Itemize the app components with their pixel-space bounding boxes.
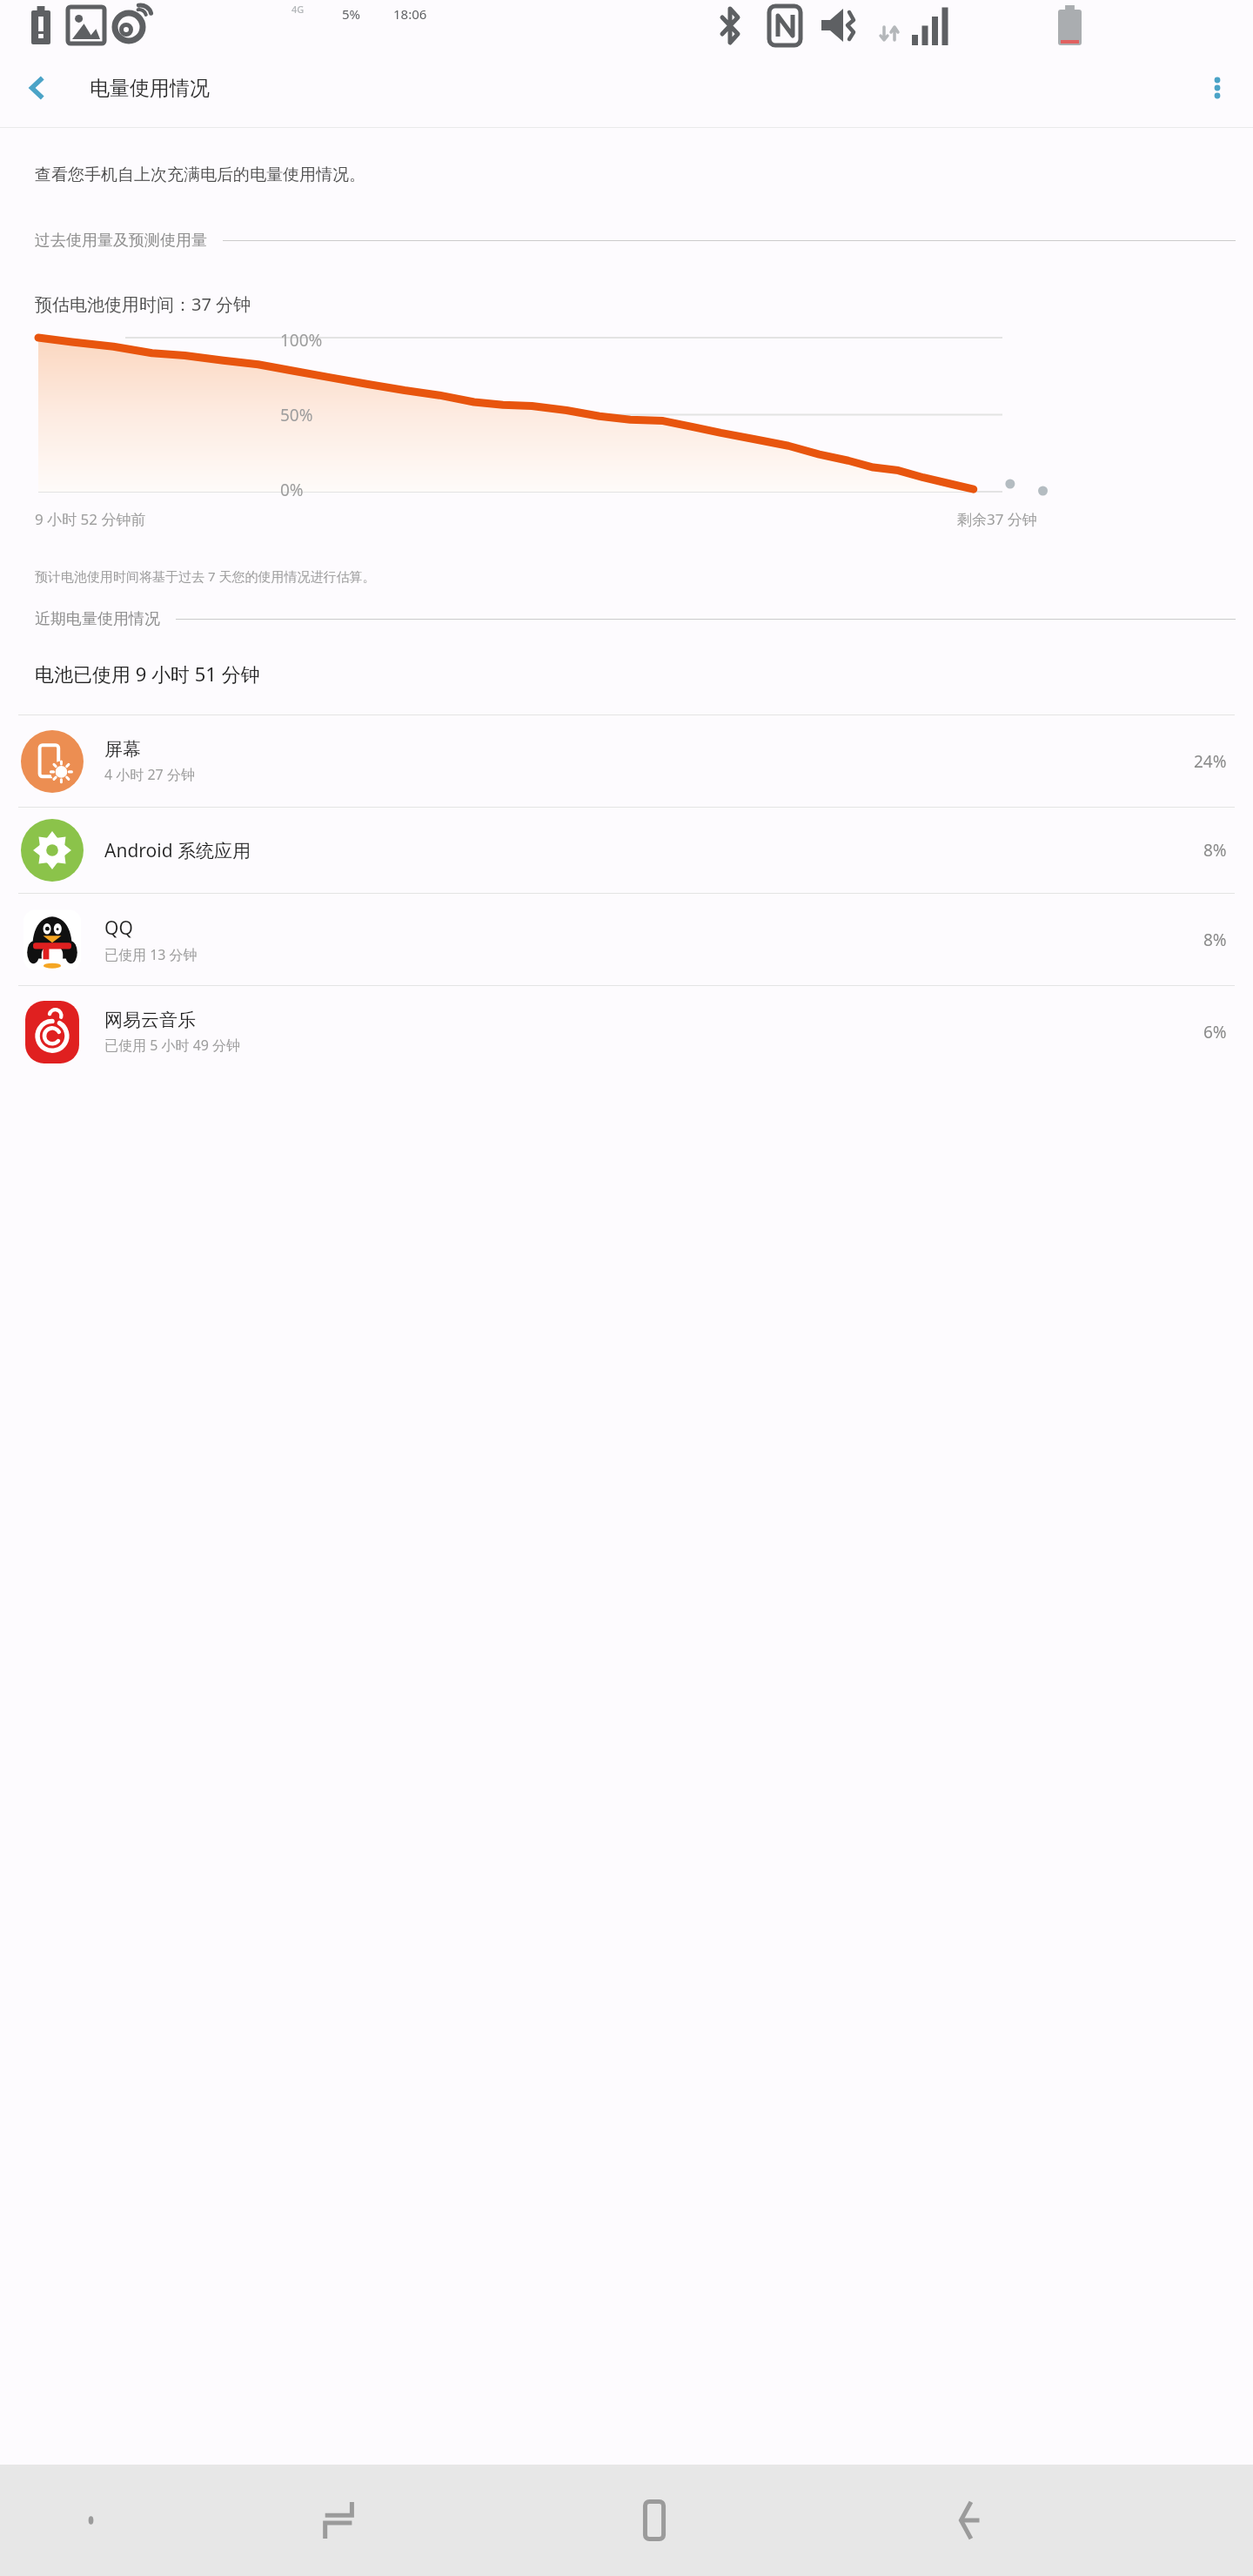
staticText: 4 小时 27 分钟 [104, 765, 195, 784]
button[interactable]: Back [812, 2465, 1127, 2576]
staticText: 预计电池使用时间将基于过去 7 天您的使用情况进行估算。 [35, 567, 376, 585]
staticText: 近期电量使用情况 [35, 609, 160, 629]
staticText: 0% [280, 479, 304, 501]
staticText: 已使用 13 分钟 [104, 945, 198, 964]
button[interactable]: Recent apps [182, 2465, 497, 2576]
staticText: 5% [342, 5, 361, 23]
staticText: 8% [1203, 839, 1227, 862]
button[interactable]: More options [1192, 63, 1243, 113]
staticText: 过去使用量及预测使用量 [35, 231, 207, 251]
staticText: 电量使用情况 [90, 76, 210, 101]
staticText: QQ [104, 916, 133, 941]
staticText: 预估电池使用时间：37 分钟 [35, 292, 251, 316]
button[interactable]: Home [497, 2465, 812, 2576]
button[interactable]: 屏幕 [0, 715, 1253, 807]
button[interactable]: QQ [0, 894, 1253, 985]
staticText: 9 小时 52 分钟前 [35, 509, 146, 529]
staticText: Android 系统应用 [104, 838, 251, 863]
staticText: 已使用 5 小时 49 分钟 [104, 1036, 241, 1055]
staticText: 100% [280, 329, 323, 352]
button[interactable]: Back [12, 63, 63, 113]
staticText: 屏幕 [104, 738, 141, 761]
staticText: 24% [1194, 750, 1227, 773]
staticText: 网易云音乐 [104, 1009, 196, 1031]
staticText: 剩余37 分钟 [957, 509, 1037, 529]
staticText: 8% [1203, 929, 1227, 951]
staticText: 50% [280, 404, 313, 426]
button[interactable]: 网易云音乐 [0, 986, 1253, 1077]
button[interactable]: Android 系统应用 [0, 808, 1253, 893]
staticText: 18:06 [393, 5, 427, 23]
staticText: 6% [1203, 1021, 1227, 1043]
staticText: 4G [291, 3, 305, 16]
staticText: 查看您手机自上次充满电后的电量使用情况。 [35, 164, 365, 185]
staticText: 电池已使用 9 小时 51 分钟 [35, 661, 260, 687]
